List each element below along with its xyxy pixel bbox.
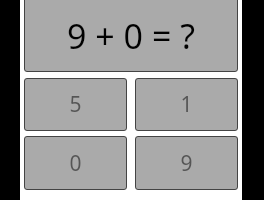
button[interactable]: 1 (135, 78, 238, 131)
staticText: 9 + 0 = ? (67, 13, 195, 59)
staticText: 9 (180, 149, 193, 178)
staticText: 0 (69, 149, 82, 178)
button[interactable]: 5 (24, 78, 127, 131)
button[interactable]: 0 (24, 136, 127, 190)
staticText: 1 (180, 90, 193, 119)
button[interactable]: 9 + 0 = ? (24, 0, 238, 72)
staticText: 5 (69, 90, 82, 119)
button[interactable]: 9 (135, 136, 238, 190)
